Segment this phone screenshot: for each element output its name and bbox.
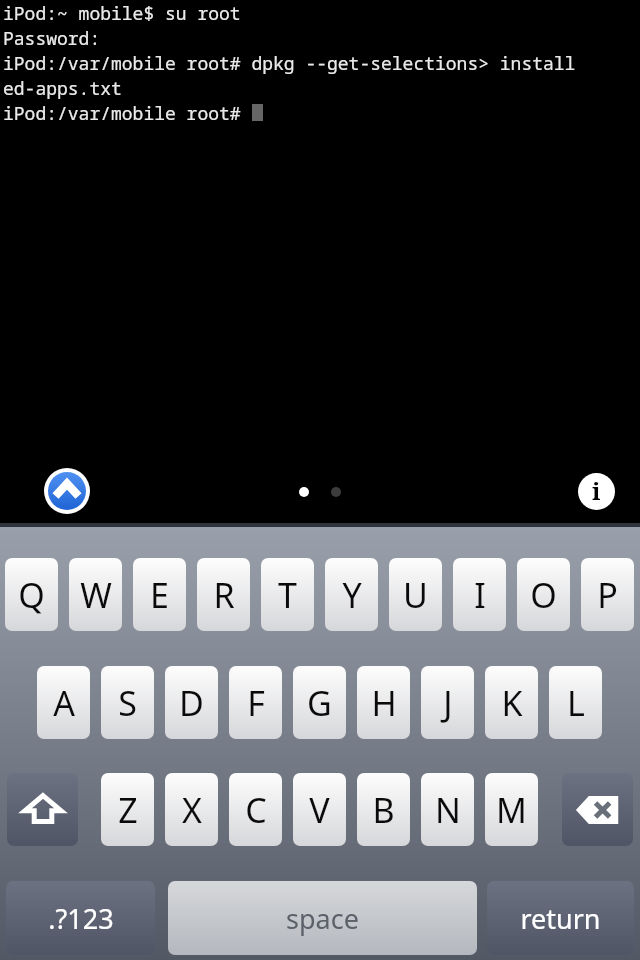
staticText: B <box>372 787 395 833</box>
button[interactable]: Y <box>325 558 378 631</box>
staticText: P <box>597 572 618 618</box>
staticText: D <box>179 680 204 726</box>
staticText: A <box>53 680 75 726</box>
button[interactable]: N <box>421 773 474 846</box>
button[interactable]: C <box>229 773 282 846</box>
button[interactable]: S <box>101 666 154 739</box>
button[interactable]: return <box>487 881 634 955</box>
staticText: O <box>530 572 557 618</box>
staticText: iPod:/var/mobile root# dpkg --get-select… <box>3 51 576 76</box>
button[interactable]: X <box>165 773 218 846</box>
button[interactable]: Q <box>5 558 58 631</box>
button[interactable]: F <box>229 666 282 739</box>
staticText: K <box>501 680 523 726</box>
button[interactable]: O <box>517 558 570 631</box>
button[interactable]: L <box>549 666 602 739</box>
button[interactable]: H <box>357 666 410 739</box>
staticText: N <box>435 787 461 833</box>
button[interactable]: space <box>168 881 477 955</box>
staticText: Z <box>118 787 138 833</box>
button[interactable]: Z <box>101 773 154 846</box>
staticText: ed-apps.txt <box>3 76 122 101</box>
staticText: X <box>182 787 202 833</box>
staticText: i <box>592 474 601 507</box>
button[interactable]: J <box>421 666 474 739</box>
button[interactable]: K <box>485 666 538 739</box>
staticText: iPod:/var/mobile root# <box>3 101 252 126</box>
button[interactable]: E <box>133 558 186 631</box>
staticText: U <box>403 572 428 618</box>
staticText: space <box>286 900 359 937</box>
button[interactable]: M <box>485 773 538 846</box>
button[interactable]: D <box>165 666 218 739</box>
button[interactable]: Backspace <box>562 773 633 846</box>
button[interactable]: T <box>261 558 314 631</box>
staticText: G <box>307 680 332 726</box>
staticText: T <box>278 572 297 618</box>
button[interactable]: G <box>293 666 346 739</box>
staticText: return <box>520 900 601 937</box>
staticText: L <box>567 680 585 726</box>
staticText: Password: <box>3 26 101 51</box>
button[interactable]: .?123 <box>6 881 155 955</box>
staticText: W <box>80 572 112 618</box>
button[interactable]: B <box>357 773 410 846</box>
staticText: Y <box>342 572 362 618</box>
button[interactable]: Scroll up <box>44 468 90 514</box>
staticText: .?123 <box>48 900 114 937</box>
staticText: H <box>371 680 397 726</box>
staticText: J <box>443 680 453 726</box>
staticText: Q <box>18 572 45 618</box>
staticText: F <box>247 680 265 726</box>
button[interactable]: Info <box>578 473 615 510</box>
button[interactable]: A <box>37 666 90 739</box>
staticText: V <box>309 787 330 833</box>
button[interactable]: U <box>389 558 442 631</box>
button[interactable]: P <box>581 558 634 631</box>
button[interactable]: W <box>69 558 122 631</box>
staticText: E <box>150 572 169 618</box>
button[interactable]: I <box>453 558 506 631</box>
staticText: I <box>474 572 486 618</box>
button[interactable]: Shift <box>7 773 78 846</box>
staticText: iPod:~ mobile$ su root <box>3 1 241 26</box>
staticText: C <box>245 787 267 833</box>
button[interactable]: R <box>197 558 250 631</box>
staticText: R <box>213 572 235 618</box>
staticText: S <box>118 680 137 726</box>
button[interactable]: V <box>293 773 346 846</box>
staticText: M <box>496 787 527 833</box>
